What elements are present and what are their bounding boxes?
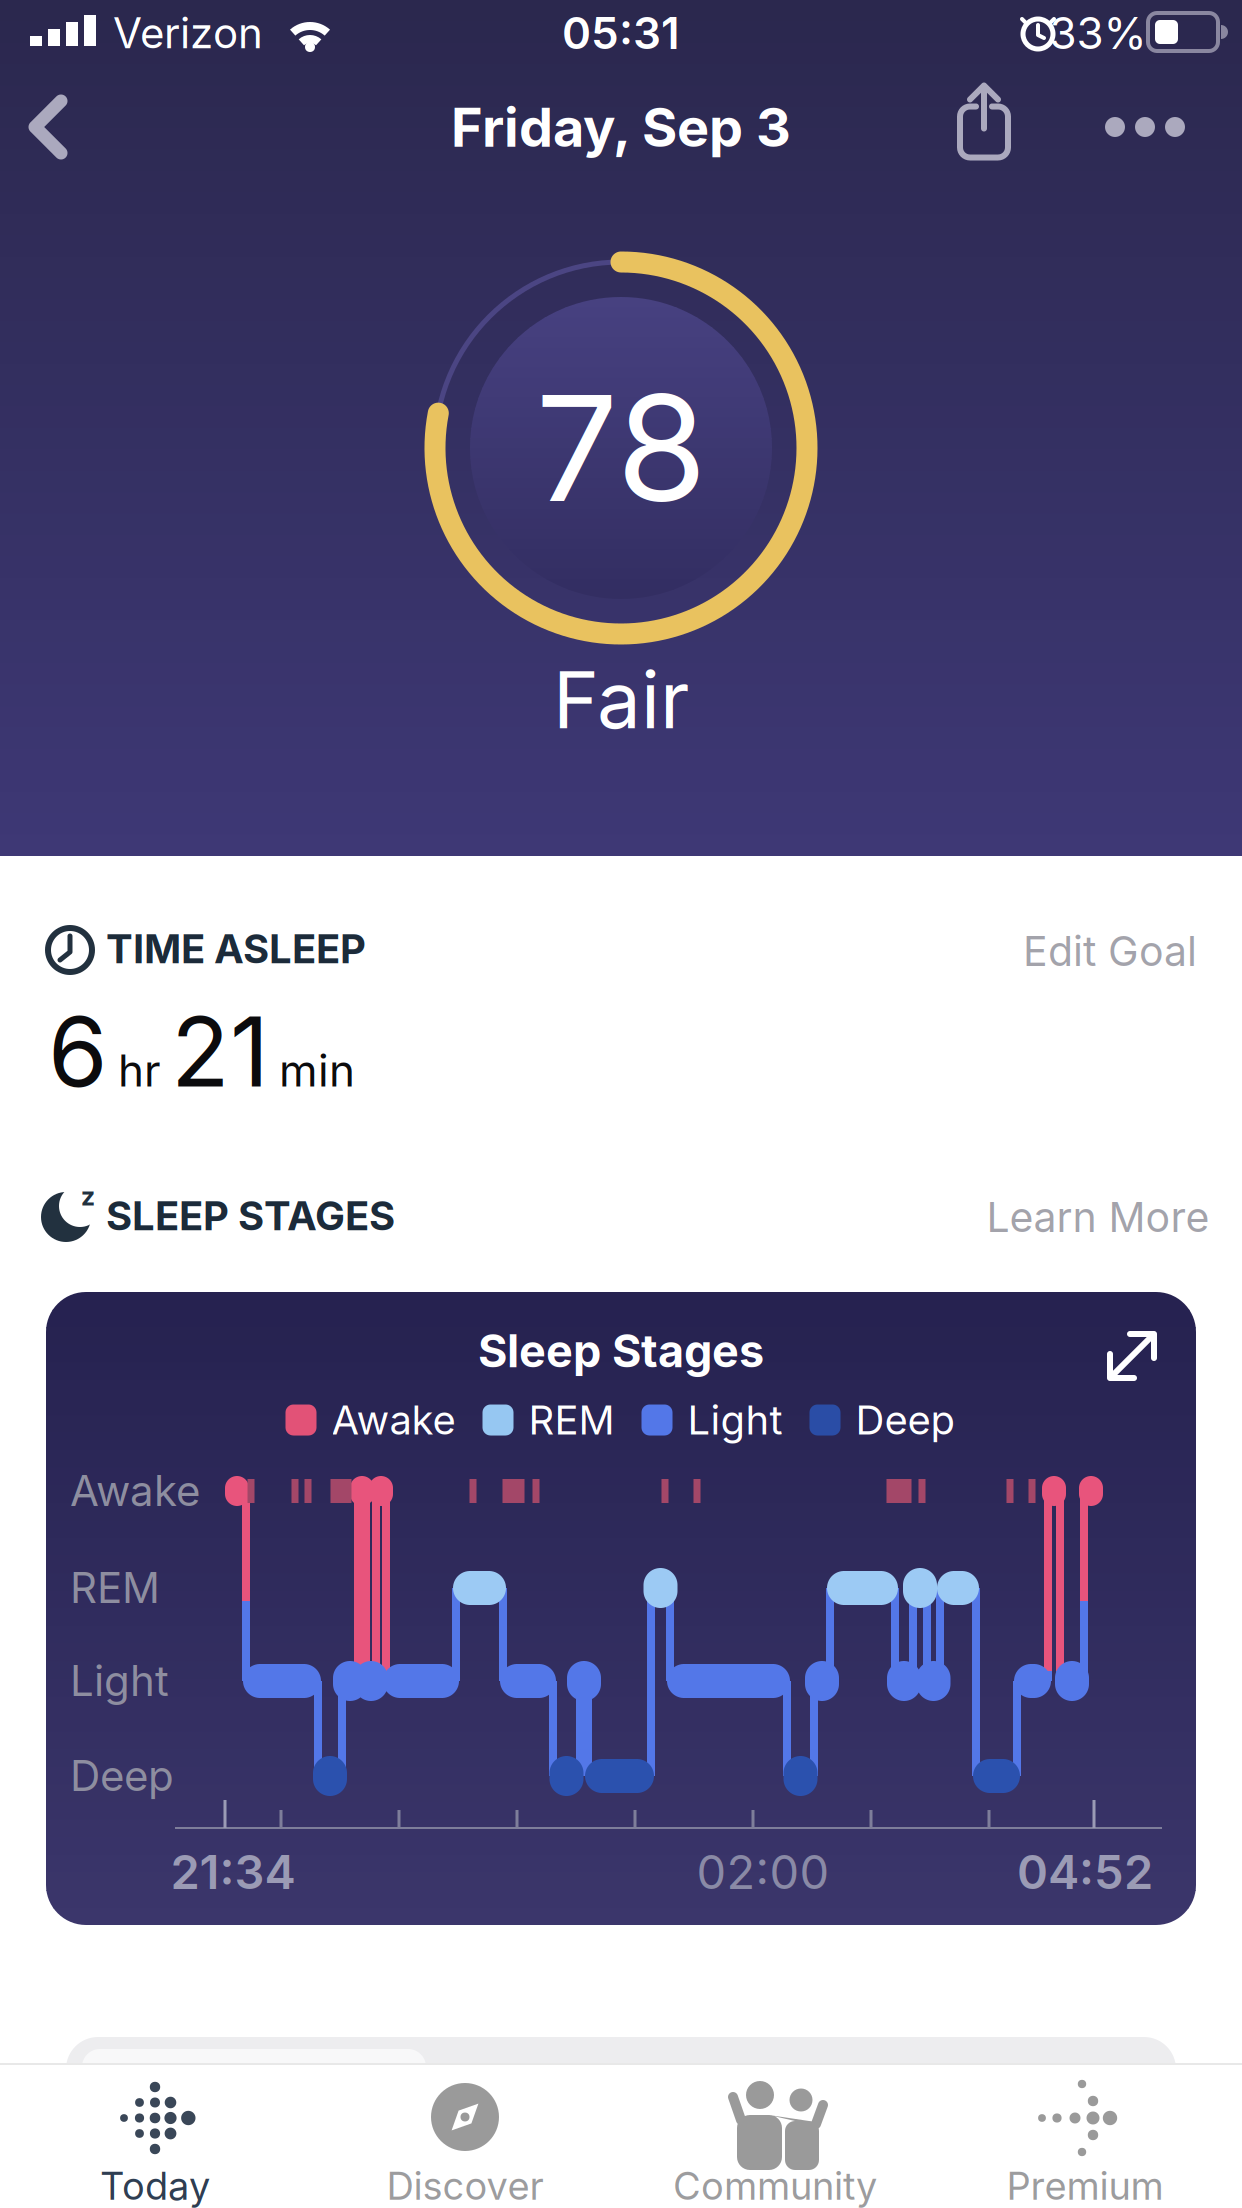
staticText: REM	[70, 1563, 160, 1612]
staticText: Discover	[386, 2164, 543, 2208]
staticText: Deep	[70, 1751, 174, 1800]
button[interactable]: Premium	[930, 2063, 1240, 2208]
staticText: Light	[70, 1656, 169, 1705]
button[interactable]: More	[1101, 93, 1189, 161]
staticText: Sleep Stages	[478, 1324, 764, 1378]
staticText: 21:34	[170, 1844, 295, 1900]
staticText: 33%	[1049, 7, 1146, 59]
staticText: Edit Goal	[1023, 927, 1197, 975]
staticText: TIME ASLEEP	[106, 925, 366, 972]
staticText: 6	[48, 995, 108, 1108]
staticText: 04:52	[1017, 1844, 1153, 1900]
staticText: Community	[673, 2164, 877, 2208]
staticText: Fair	[553, 654, 689, 746]
staticText: Learn More	[986, 1193, 1209, 1241]
staticText: Awake	[70, 1466, 200, 1515]
staticText: Verizon	[113, 8, 263, 58]
staticText: 21	[171, 995, 269, 1108]
staticText: 02:00	[696, 1844, 829, 1900]
button[interactable]: Community	[620, 2063, 930, 2208]
button[interactable]: Expand	[1100, 1324, 1164, 1388]
staticText: hr	[118, 1045, 161, 1096]
staticText: REM	[528, 1396, 614, 1444]
staticText: 78	[535, 362, 706, 534]
staticText: z	[81, 1181, 95, 1211]
button[interactable]: Share	[960, 84, 1008, 159]
staticText: min	[279, 1045, 355, 1096]
staticText: Today	[100, 2164, 210, 2208]
staticText: Deep	[855, 1396, 954, 1444]
staticText: Light	[687, 1396, 782, 1444]
button[interactable]: Edit Goal	[1023, 927, 1197, 975]
staticText: Premium	[1006, 2164, 1163, 2208]
staticText: Awake	[331, 1396, 455, 1444]
button[interactable]: Discover	[310, 2063, 620, 2208]
staticText: Friday, Sep 3	[451, 95, 791, 159]
staticText: SLEEP STAGES	[106, 1192, 395, 1239]
button[interactable]: Back	[13, 83, 101, 171]
button[interactable]: Learn More	[986, 1193, 1209, 1241]
staticText: 05:31	[562, 7, 680, 59]
button[interactable]: Today	[0, 2063, 310, 2208]
